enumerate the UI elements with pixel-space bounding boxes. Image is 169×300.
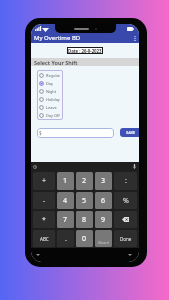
button[interactable]: 3: [95, 172, 112, 190]
staticText: %: [123, 196, 129, 206]
staticText: .: [65, 234, 67, 244]
button[interactable]: $: [37, 128, 114, 138]
staticText: 8: [82, 215, 87, 225]
staticText: Holiday: [46, 97, 60, 102]
staticText: Gboard: [98, 241, 109, 245]
staticText: $: [39, 130, 42, 136]
staticText: 7: [63, 215, 68, 225]
staticText: Done: [120, 236, 132, 242]
staticText: Date : 26-9-2023: [68, 48, 102, 54]
staticText: Regular: [46, 73, 61, 78]
staticText: *: [42, 215, 46, 225]
button[interactable]: 6: [95, 192, 112, 209]
other: Backspace: [122, 217, 129, 222]
button[interactable]: ABC: [33, 230, 55, 247]
button[interactable]: Gboard: [95, 230, 112, 247]
button[interactable]: Night: [37, 87, 63, 95]
staticText: 1: [63, 176, 68, 186]
button[interactable]: %: [114, 192, 137, 209]
staticText: 0: [82, 234, 87, 244]
staticText: :: [125, 176, 127, 186]
button[interactable]: Regular: [37, 71, 63, 79]
button[interactable]: Leave: [37, 103, 63, 111]
button[interactable]: :: [114, 172, 137, 190]
staticText: Select Your Shift: [34, 59, 78, 66]
staticText: ABC: [40, 236, 49, 242]
button[interactable]: Recents: [126, 251, 134, 259]
button[interactable]: 2: [76, 172, 93, 190]
button[interactable]: 5: [76, 192, 93, 209]
staticText: 5: [82, 196, 87, 206]
staticText: Day Off: [46, 113, 60, 118]
button[interactable]: More options: [130, 33, 139, 43]
button[interactable]: .: [57, 230, 74, 247]
button[interactable]: *: [33, 211, 55, 228]
staticText: Night: [46, 89, 57, 94]
staticText: 4: [63, 196, 68, 206]
button[interactable]: 0: [76, 230, 93, 247]
button[interactable]: 9: [95, 211, 112, 228]
staticText: 3: [101, 176, 106, 186]
button[interactable]: 7: [57, 211, 74, 228]
button[interactable]: 1: [57, 172, 74, 190]
staticText: SAVE: [126, 130, 136, 135]
staticText: +: [42, 176, 47, 186]
staticText: My Overtime BD: [34, 34, 130, 42]
button[interactable]: Holiday: [37, 95, 63, 103]
button[interactable]: Day Off: [37, 111, 63, 119]
button[interactable]: SAVE: [120, 128, 139, 137]
button[interactable]: Back: [34, 251, 42, 259]
staticText: 2: [82, 176, 87, 186]
staticText: 9: [101, 215, 106, 225]
staticText: Leave: [46, 105, 57, 110]
button[interactable]: 8: [76, 211, 93, 228]
button[interactable]: Backspace: [114, 211, 137, 228]
button[interactable]: -: [33, 192, 55, 209]
button[interactable]: +: [33, 172, 55, 190]
button[interactable]: 4: [57, 192, 74, 209]
button[interactable]: Day: [37, 79, 63, 87]
button[interactable]: Done: [114, 230, 137, 247]
staticText: -: [43, 196, 46, 206]
staticText: 6: [101, 196, 106, 206]
staticText: Day: [46, 81, 54, 86]
